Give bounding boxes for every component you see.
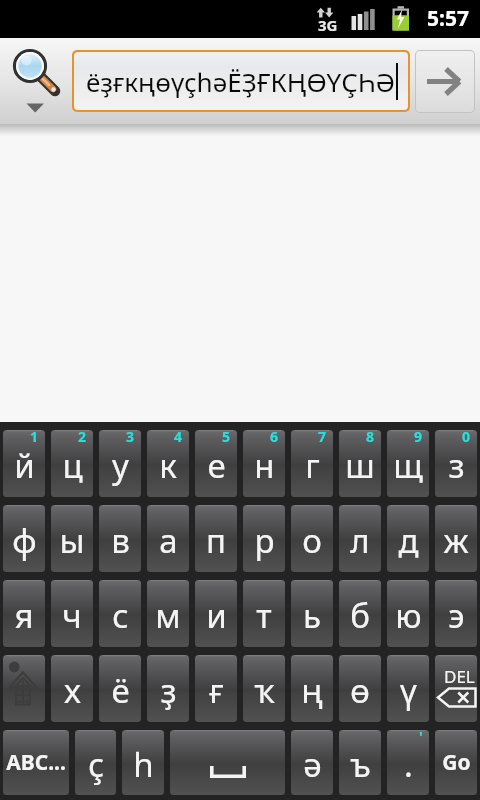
staticText: ь (303, 593, 321, 638)
button[interactable]: ө (339, 655, 381, 722)
staticText: о (302, 518, 322, 563)
staticText: ю (395, 593, 422, 638)
staticText: ҙ (160, 668, 177, 713)
staticText: 6 (270, 430, 279, 446)
staticText: ү (400, 668, 417, 713)
button[interactable]: к (147, 430, 189, 497)
button[interactable]: ё (99, 655, 141, 722)
button[interactable]: р (243, 505, 285, 572)
button[interactable]: б (339, 580, 381, 647)
button[interactable]: ёҙғкңөүçһәЁҘҒКҢӨҮÇҺӘ (74, 52, 408, 110)
staticText: ъ (350, 742, 371, 787)
staticText: 9 (414, 430, 423, 446)
staticText: ф (12, 518, 37, 563)
staticText: я (14, 593, 34, 638)
button[interactable]: Shift (3, 655, 45, 722)
button[interactable]: х (51, 655, 93, 722)
button[interactable]: ш (339, 430, 381, 497)
staticText: у (112, 443, 129, 488)
staticText: ә (303, 742, 322, 787)
staticText: ң (301, 668, 323, 713)
button[interactable]: й (3, 430, 45, 497)
staticText: ç (88, 742, 104, 787)
button[interactable]: г (291, 430, 333, 497)
staticText: д (398, 518, 419, 563)
button[interactable]: ы (51, 505, 93, 572)
staticText: ёҙғкңөүçһәЁҘҒКҢӨҮÇҺӘ (86, 64, 396, 99)
button[interactable]: һ (122, 730, 164, 795)
staticText: п (206, 518, 226, 563)
staticText: 3G (318, 15, 338, 35)
button[interactable]: ә (291, 730, 333, 795)
button[interactable]: щ (387, 430, 429, 497)
staticText: т (256, 593, 272, 638)
staticText: э (448, 593, 465, 638)
button[interactable]: а (147, 505, 189, 572)
button[interactable]: л (339, 505, 381, 572)
staticText: и (206, 593, 227, 638)
button[interactable]: Go (435, 730, 477, 795)
staticText: 0 (462, 430, 471, 446)
staticText: 3 (126, 430, 135, 446)
staticText: м (155, 593, 181, 638)
staticText: 2 (78, 430, 87, 446)
staticText: ғ (209, 668, 224, 713)
button[interactable]: м (147, 580, 189, 647)
staticText: з (448, 443, 465, 488)
staticText: щ (393, 443, 423, 488)
button[interactable]: ç (75, 730, 116, 795)
staticText: ё (111, 668, 130, 713)
staticText: ж (443, 518, 469, 563)
button[interactable]: ж (435, 505, 477, 572)
staticText: ө (350, 668, 370, 713)
staticText: л (350, 518, 370, 563)
button[interactable]: т (243, 580, 285, 647)
staticText: к (159, 443, 177, 488)
button[interactable]: ю (387, 580, 429, 647)
button[interactable]: ь (291, 580, 333, 647)
button[interactable]: е (195, 430, 237, 497)
staticText: е (207, 443, 226, 488)
button[interactable]: я (3, 580, 45, 647)
staticText: 5 (222, 430, 231, 446)
button[interactable]: и (195, 580, 237, 647)
staticText: н (254, 443, 275, 488)
button[interactable]: Space (170, 730, 285, 795)
staticText: х (64, 668, 81, 713)
staticText: ш (345, 443, 375, 488)
staticText: 5:57 (427, 4, 469, 33)
staticText: ' (419, 730, 423, 746)
button[interactable]: ү (387, 655, 429, 722)
button[interactable]: ABC... (3, 730, 69, 795)
button[interactable]: ғ (195, 655, 237, 722)
button[interactable]: з (435, 430, 477, 497)
staticText: в (111, 518, 130, 563)
staticText: а (159, 518, 178, 563)
button[interactable]: ч (51, 580, 93, 647)
button[interactable]: ҡ (243, 655, 285, 722)
button[interactable]: н (243, 430, 285, 497)
button[interactable]: ң (291, 655, 333, 722)
staticText: 7 (318, 430, 327, 446)
button[interactable]: в (99, 505, 141, 572)
button[interactable]: п (195, 505, 237, 572)
staticText: б (350, 593, 370, 638)
button[interactable]: о (291, 505, 333, 572)
button[interactable]: Delete (435, 655, 477, 722)
button[interactable]: с (99, 580, 141, 647)
button[interactable]: Search (416, 51, 474, 112)
button[interactable]: ъ (339, 730, 381, 795)
button[interactable]: э (435, 580, 477, 647)
button[interactable]: ф (3, 505, 45, 572)
staticText: ABC... (6, 748, 66, 777)
button[interactable]: ҙ (147, 655, 189, 722)
button[interactable]: д (387, 505, 429, 572)
staticText: 8 (366, 430, 375, 446)
button[interactable]: ц (51, 430, 93, 497)
staticText: р (254, 518, 275, 563)
button[interactable]: у (99, 430, 141, 497)
staticText: ы (59, 518, 85, 563)
button[interactable]: . (387, 730, 429, 795)
staticText: ц (62, 443, 83, 488)
button[interactable]: Search provider (0, 38, 72, 124)
